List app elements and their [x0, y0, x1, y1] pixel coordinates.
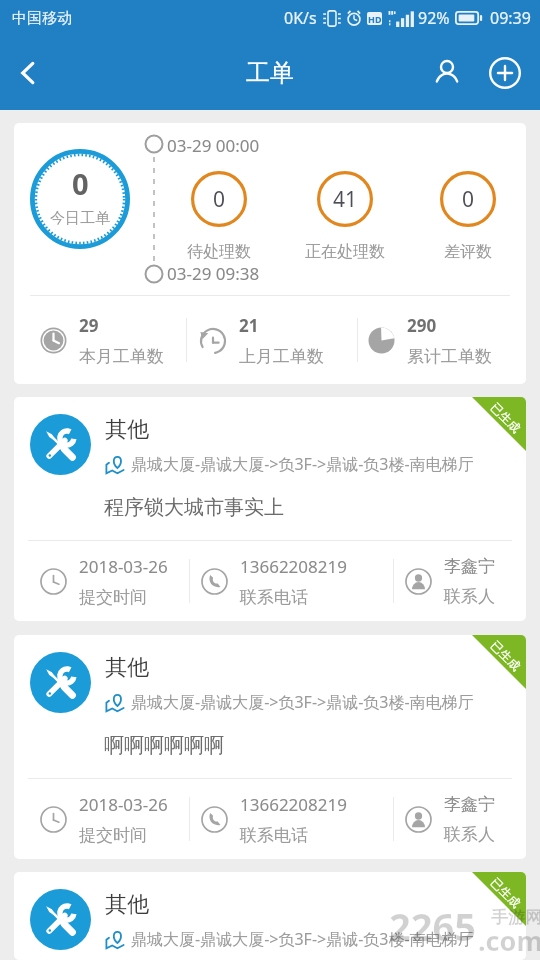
staticText: 联系人	[444, 586, 495, 607]
staticText: 41	[333, 185, 358, 214]
staticText: 正在处理数	[305, 242, 385, 262]
button[interactable]: Back	[0, 45, 56, 101]
staticText: 已生成	[488, 399, 524, 436]
staticText: 其他	[105, 891, 149, 919]
button[interactable]: Account	[418, 44, 476, 102]
staticText: 鼎城大厦-鼎诚大厦->负3F->鼎诚-负3楼-南电梯厅	[131, 928, 474, 950]
staticText: 已生成	[488, 637, 524, 674]
staticText: 联系人	[444, 824, 495, 845]
staticText: 待处理数	[187, 242, 251, 262]
staticText: 其他	[105, 416, 149, 444]
staticText: 2018-03-26	[79, 793, 168, 816]
staticText: 其他	[105, 654, 149, 682]
staticText: 0	[462, 185, 475, 214]
staticText: 13662208219	[240, 793, 347, 816]
button[interactable]: 其他	[14, 397, 526, 621]
staticText: 鼎城大厦-鼎诚大厦->负3F->鼎诚-负3楼-南电梯厅	[131, 691, 474, 713]
staticText: 本月工单数	[79, 346, 164, 367]
staticText: 0	[72, 164, 89, 203]
staticText: 啊啊啊啊啊啊	[104, 733, 224, 758]
staticText: 联系电话	[240, 587, 308, 608]
staticText: 李鑫宁	[444, 794, 495, 815]
staticText: 中国移动	[12, 9, 72, 28]
staticText: 2265	[389, 900, 476, 952]
staticText: 提交时间	[79, 825, 147, 846]
staticText: 03-29 00:00	[167, 134, 260, 157]
staticText: 手游网	[491, 907, 540, 928]
staticText: 提交时间	[79, 587, 147, 608]
staticText: 09:39	[490, 7, 531, 29]
button[interactable]: 其他	[14, 635, 526, 859]
staticText: 0K/s	[284, 7, 317, 29]
staticText: 联系电话	[240, 825, 308, 846]
staticText: 鼎城大厦-鼎诚大厦->负3F->鼎诚-负3楼-南电梯厅	[131, 453, 474, 475]
staticText: 290	[407, 314, 437, 337]
staticText: 13662208219	[240, 555, 347, 578]
button[interactable]: 其他	[14, 872, 526, 960]
staticText: HD	[368, 13, 382, 25]
staticText: 已生成	[488, 874, 524, 911]
staticText: 李鑫宁	[444, 556, 495, 577]
staticText: 03-29 09:38	[167, 262, 260, 285]
staticText: 程序锁大城市事实上	[104, 495, 284, 520]
staticText: .com	[478, 922, 540, 959]
staticText: 上月工单数	[239, 346, 324, 367]
staticText: 工单	[246, 58, 294, 88]
staticText: 29	[79, 314, 99, 337]
staticText: 2018-03-26	[79, 555, 168, 578]
staticText: 差评数	[444, 242, 492, 262]
staticText: 0	[213, 185, 226, 214]
staticText: 今日工单	[50, 209, 110, 228]
staticText: 92%	[418, 7, 450, 29]
button[interactable]: Add	[476, 44, 534, 102]
staticText: 21	[239, 314, 259, 337]
staticText: 累计工单数	[407, 346, 492, 367]
